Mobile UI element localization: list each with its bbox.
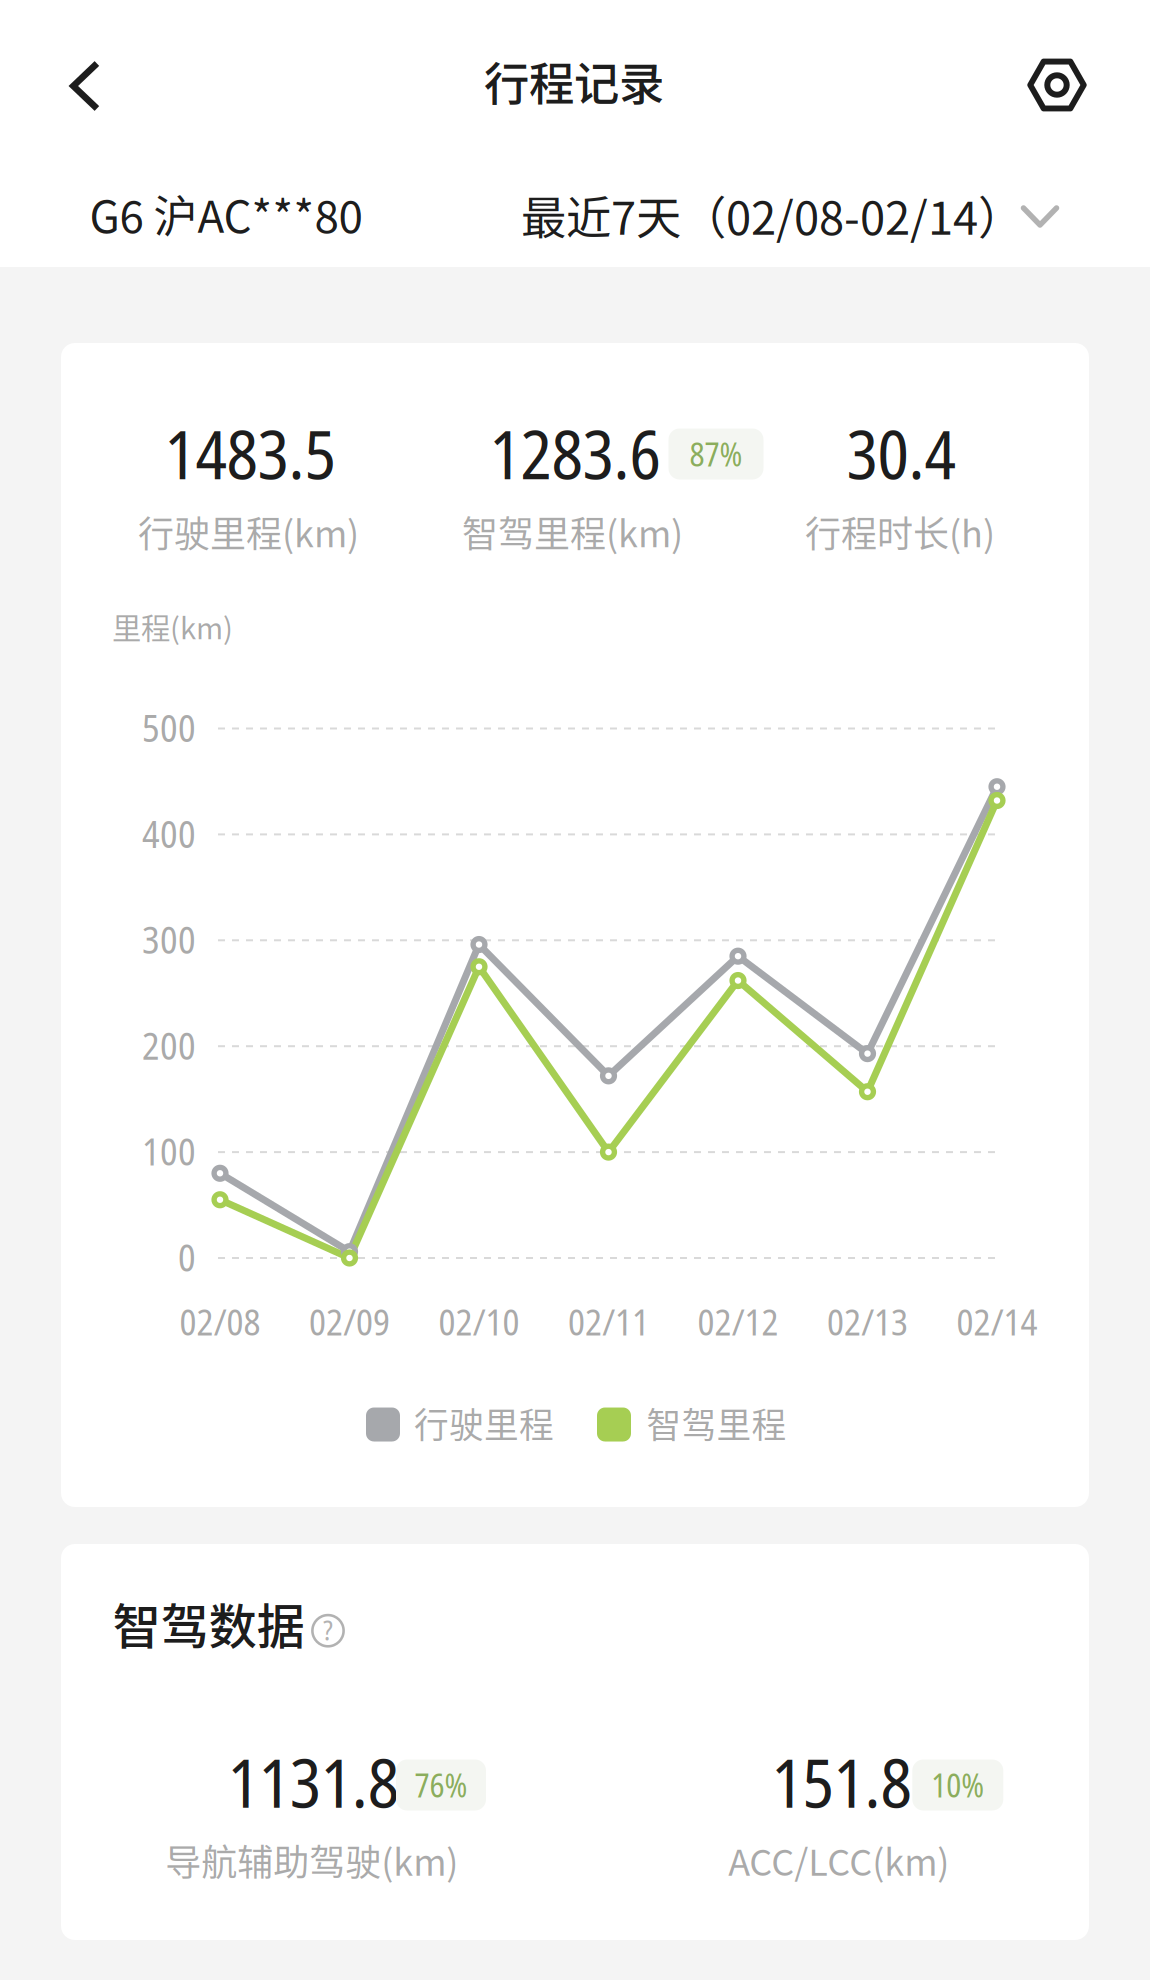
staticText: 30.4 [846,408,955,499]
staticText: 151.8 [771,1736,911,1827]
staticText: G6 沪AC***80 [89,182,362,245]
staticText: 1283.6 [489,408,660,499]
button[interactable]: 最近7天（02/08-02/14） [518,164,1078,264]
staticText: ACC/LCC(km) [728,1834,949,1886]
staticText: 02/13 [827,1297,908,1346]
staticText: 200 [142,1020,196,1071]
staticText: 400 [142,808,196,859]
button[interactable]: Back [30,31,140,141]
button[interactable]: G6 沪AC***80 [89,164,362,263]
staticText: 1483.5 [164,408,335,499]
staticText: 02/08 [179,1297,260,1346]
staticText: 1131.8 [228,1736,399,1827]
staticText: 导航辅助驾驶(km) [165,1834,458,1886]
staticText: 02/11 [568,1297,649,1346]
staticText: 里程(km) [112,605,233,648]
staticText: 行驶里程 [414,1398,554,1448]
staticText: 10% [931,1763,984,1807]
staticText: 87% [689,432,742,476]
staticText: 02/10 [438,1297,519,1346]
staticText: 0 [178,1232,196,1282]
staticText: 行驶里程(km) [138,505,359,557]
staticText: 300 [142,914,196,965]
staticText: 最近7天（02/08-02/14） [521,182,1023,248]
staticText: 智驾数据 [113,1588,305,1658]
staticText: 智驾里程(km) [462,505,683,557]
staticText: ? [323,1611,333,1649]
staticText: 500 [142,702,196,753]
button[interactable]: Settings [1003,31,1113,141]
staticText: 100 [142,1126,196,1176]
staticText: 76% [414,1763,467,1807]
staticText: 行程记录 [484,48,664,114]
staticText: 02/14 [956,1297,1037,1346]
staticText: 智驾里程 [646,1398,786,1448]
staticText: 02/12 [697,1297,778,1346]
staticText: 02/09 [309,1297,390,1346]
staticText: 行程时长(h) [805,505,995,557]
